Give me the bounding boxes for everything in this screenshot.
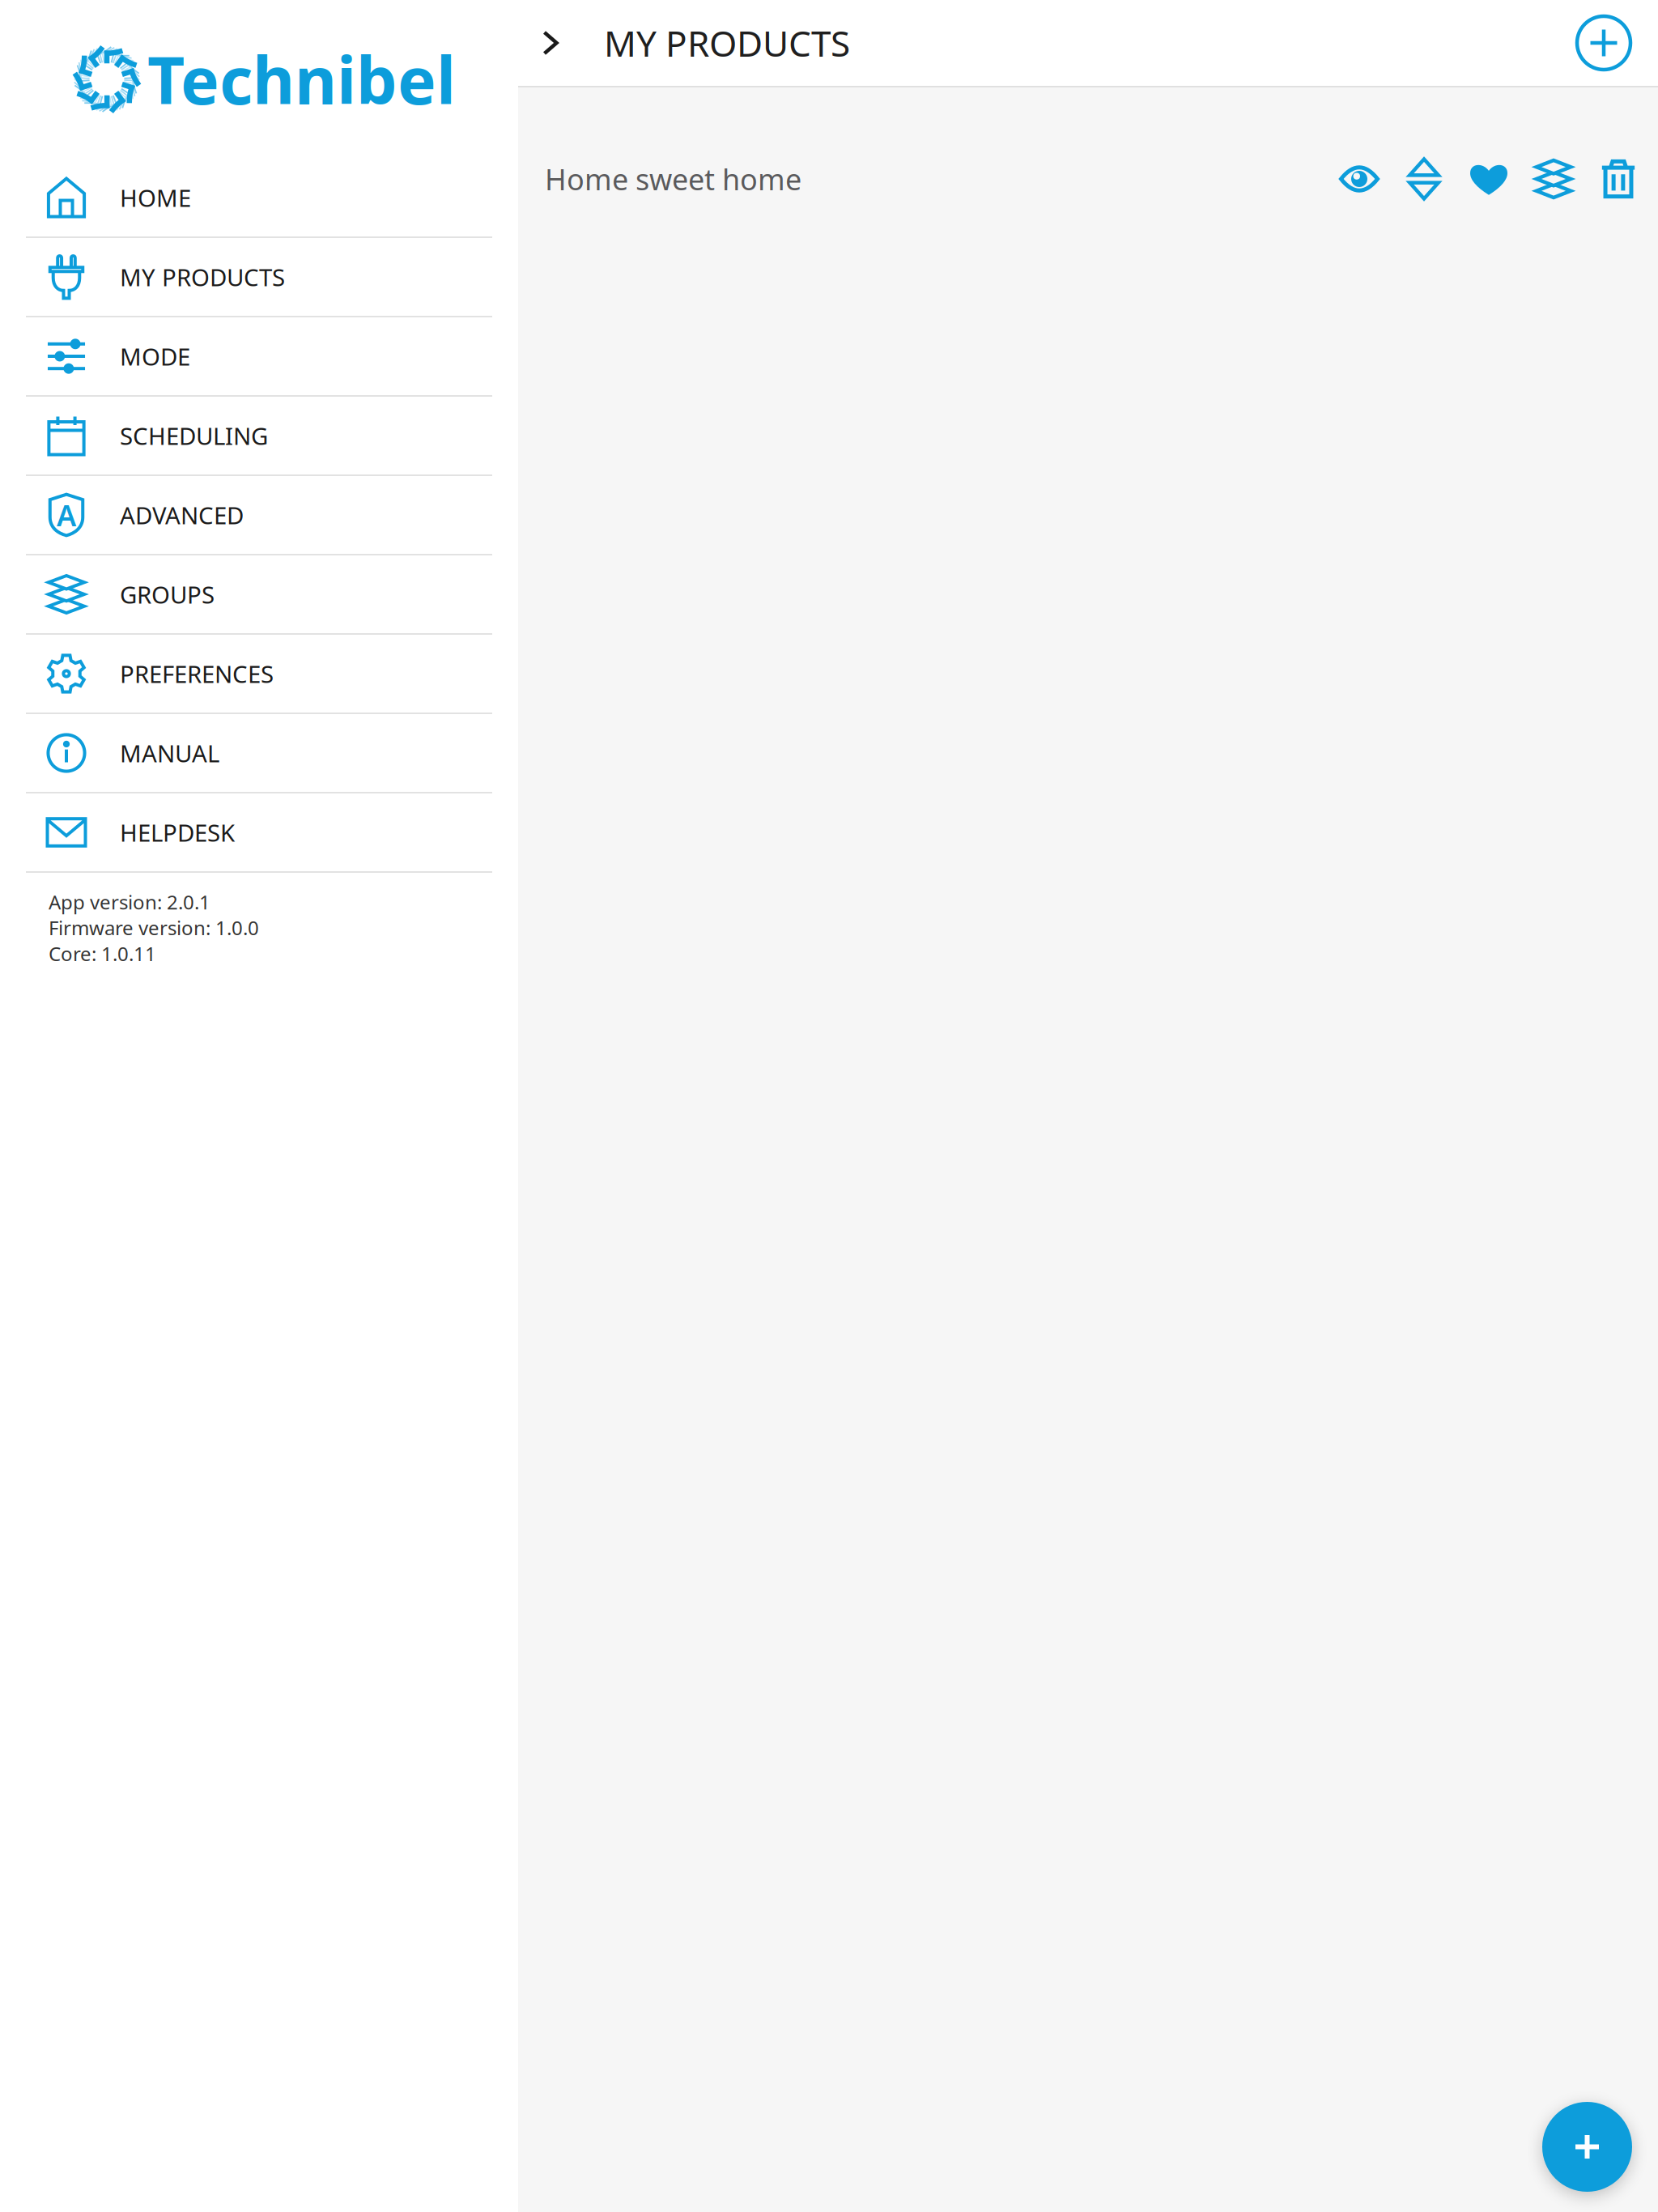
- staticText: Firmware version: 1.0.0: [49, 915, 259, 941]
- button[interactable]: Show sidebar: [525, 17, 576, 69]
- staticText: MY PRODUCTS: [120, 261, 285, 293]
- button[interactable]: Add: [1542, 2102, 1632, 2192]
- staticText: A: [57, 496, 76, 534]
- staticText: GROUPS: [120, 579, 215, 610]
- staticText: HOME: [120, 182, 191, 213]
- button[interactable]: MY PRODUCTS: [0, 238, 518, 317]
- button[interactable]: A: [0, 476, 518, 555]
- staticText: Core: 1.0.11: [49, 941, 156, 966]
- staticText: SCHEDULING: [120, 420, 268, 451]
- button[interactable]: Show: [1340, 160, 1379, 198]
- staticText: ADVANCED: [120, 499, 244, 531]
- button[interactable]: HOME: [0, 159, 518, 238]
- button[interactable]: Favourite: [1469, 160, 1508, 198]
- button[interactable]: MANUAL: [0, 714, 518, 793]
- staticText: Technibel: [147, 36, 456, 122]
- staticText: PREFERENCES: [120, 658, 274, 689]
- staticText: MODE: [120, 340, 190, 372]
- button[interactable]: GROUPS: [0, 555, 518, 635]
- staticText: MY PRODUCTS: [604, 19, 850, 67]
- button[interactable]: MODE: [0, 317, 518, 397]
- staticText: Home sweet home: [545, 160, 801, 198]
- button[interactable]: Reorder: [1405, 158, 1443, 200]
- button[interactable]: SCHEDULING: [0, 397, 518, 476]
- button[interactable]: Delete: [1599, 160, 1638, 198]
- button[interactable]: Groups: [1534, 159, 1573, 199]
- staticText: HELPDESK: [120, 817, 235, 848]
- staticText: MANUAL: [120, 737, 219, 769]
- button[interactable]: HELPDESK: [0, 793, 518, 873]
- button[interactable]: PREFERENCES: [0, 635, 518, 714]
- staticText: App version: 2.0.1: [49, 889, 210, 915]
- button[interactable]: Add product: [1571, 11, 1636, 75]
